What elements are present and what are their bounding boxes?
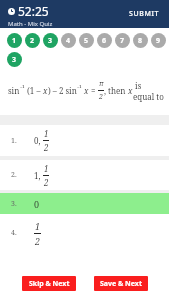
button[interactable]: Go to question 4 (61, 33, 76, 48)
staticText: 2 (44, 177, 49, 188)
staticText: 52:25 (18, 3, 49, 19)
button[interactable]: Go to question 3 (43, 33, 58, 48)
staticText: x (43, 85, 48, 96)
staticText: sin (8, 85, 20, 96)
staticText: 4. (11, 228, 17, 238)
staticText: 7 (120, 36, 125, 46)
staticText: 1 (12, 36, 17, 46)
button[interactable]: Save & Next (94, 276, 148, 291)
button[interactable]: Go to question 9 (151, 33, 166, 48)
staticText: Math - Mix Quiz (8, 20, 53, 28)
staticText: x (128, 85, 133, 96)
button[interactable]: 3. (0, 193, 169, 214)
button[interactable]: Go to question 3 (7, 52, 22, 67)
button[interactable]: Go to question 1 (7, 33, 22, 48)
staticText: Skip & Next (29, 279, 70, 289)
staticText: 1 (44, 163, 49, 174)
button[interactable]: Skip & Next (22, 276, 76, 291)
staticText: Save & Next (100, 279, 142, 289)
staticText: 2. (11, 170, 17, 180)
staticText: = (89, 85, 98, 96)
staticText: 2 (30, 36, 35, 46)
button[interactable]: SUBMIT (129, 9, 160, 19)
staticText: 2 (35, 235, 41, 247)
staticText: SUBMIT (129, 9, 160, 19)
staticText: x (82, 85, 89, 96)
staticText: 9 (156, 36, 161, 46)
staticText: is equal to (133, 80, 164, 102)
staticText: (1 – (25, 85, 43, 96)
button[interactable]: 1. (0, 125, 169, 156)
staticText: ) – 2 sin (48, 85, 77, 96)
button[interactable]: Go to question 5 (79, 33, 94, 48)
button[interactable]: Go to question 2 (25, 33, 40, 48)
staticText: 1 (44, 128, 49, 139)
staticText: ⁻¹ (20, 85, 25, 93)
button[interactable]: Go to question 7 (115, 33, 130, 48)
staticText: 0, (34, 135, 41, 146)
button[interactable]: Go to question 8 (133, 33, 148, 48)
staticText: ⁻¹ (77, 85, 82, 93)
staticText: 2 (99, 92, 103, 102)
staticText: 6 (102, 36, 107, 46)
button[interactable]: 4. (0, 218, 169, 248)
staticText: 5 (84, 36, 89, 46)
staticText: 1, (34, 170, 41, 181)
staticText: , then (104, 85, 128, 96)
staticText: 3. (11, 199, 17, 209)
staticText: 3 (48, 36, 53, 46)
button[interactable]: 2. (0, 160, 169, 190)
staticText: 4 (66, 36, 71, 46)
staticText: 8 (138, 36, 143, 46)
staticText: 0 (34, 198, 40, 210)
staticText: 2 (44, 142, 49, 153)
staticText: π (99, 79, 104, 89)
staticText: 1. (11, 136, 17, 146)
staticText: 1 (35, 220, 41, 232)
staticText: 3 (12, 55, 17, 65)
button[interactable]: Go to question 6 (97, 33, 112, 48)
